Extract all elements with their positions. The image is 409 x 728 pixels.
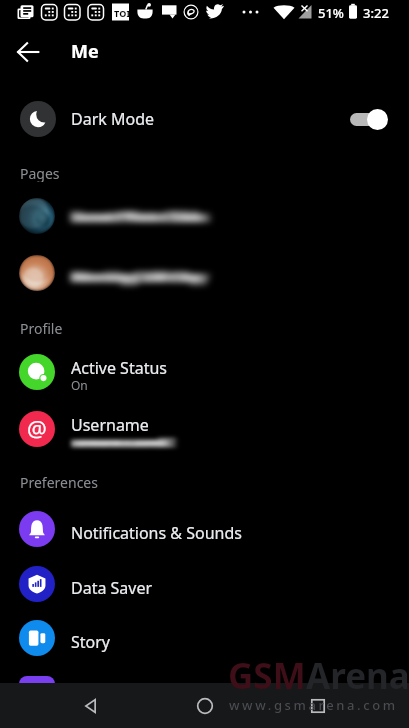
button[interactable]: Back (6, 30, 50, 74)
staticText: someone.name2 (79, 434, 178, 450)
staticText: Morning Cafe Day (63, 266, 197, 286)
button[interactable]: Home (184, 685, 226, 727)
staticText: someone.name2 (70, 434, 169, 450)
button[interactable]: Active Status (0, 354, 409, 400)
staticText: someone.name2 (67, 434, 166, 450)
staticText: Morning Cafe Day (72, 266, 206, 286)
staticText: Sunset Photo Clubs (67, 207, 202, 226)
button[interactable]: Sunset Photo Clubs (0, 198, 409, 244)
button[interactable]: Morning Cafe Day (0, 255, 409, 301)
staticText: someone.name2 (65, 434, 164, 450)
staticText: Morning Cafe Day (70, 266, 204, 286)
staticText: TOI (114, 7, 131, 19)
staticText: Me (71, 39, 99, 64)
staticText: Preferences (20, 473, 98, 491)
staticText: Notifications & Sounds (71, 522, 242, 544)
staticText: Sunset Photo Clubs (69, 207, 204, 226)
staticText: Dark Mode (71, 108, 155, 130)
staticText: On (71, 377, 88, 393)
button[interactable]: Story (0, 620, 409, 666)
staticText: Morning Cafe Day (75, 266, 209, 286)
staticText: Morning Cafe Day (67, 266, 201, 286)
staticText: Active Status (71, 357, 167, 379)
staticText: Sunset Photo Clubs (76, 207, 211, 226)
staticText: Sunset Photo Clubs (64, 207, 199, 226)
staticText: Morning Cafe Day (64, 266, 198, 286)
staticText: www.gsmarena.com (229, 696, 398, 714)
staticText: Sunset Photo Clubs (78, 207, 213, 226)
staticText: Morning Cafe Day (78, 266, 212, 286)
staticText: Sunset Photo Clubs (70, 207, 205, 226)
staticText: Sunset Photo Clubs (66, 207, 201, 226)
staticText: Sunset Photo Clubs (73, 207, 208, 226)
staticText: Data Saver (71, 577, 153, 599)
staticText: someone.name2 (68, 434, 167, 450)
staticText: @ (27, 413, 47, 443)
button[interactable]: Dark Mode (0, 96, 409, 142)
staticText: someone.name2 (73, 434, 172, 450)
staticText: someone.name2 (76, 434, 175, 450)
staticText: 3:22 (363, 4, 389, 22)
staticText: Morning Cafe Day (76, 266, 210, 286)
staticText: Story (71, 631, 111, 653)
button[interactable]: @ (0, 411, 409, 457)
staticText: GSM (228, 652, 306, 700)
staticText: someone.name2 (64, 434, 163, 450)
staticText: 51% (318, 4, 344, 22)
staticText: Morning Cafe Day (73, 266, 207, 286)
staticText: Morning Cafe Day (66, 266, 200, 286)
staticText: someone.name2 (71, 434, 170, 450)
staticText: Username (71, 414, 149, 436)
button[interactable]: Recents (297, 685, 339, 727)
staticText: Sunset Photo Clubs (63, 207, 198, 226)
staticText: someone.name2 (77, 434, 176, 450)
button[interactable]: Back (70, 685, 112, 727)
button[interactable]: Data Saver (0, 566, 409, 612)
staticText: Morning Cafe Day (69, 266, 203, 286)
staticText: someone.name2 (74, 434, 173, 450)
staticText: Sunset Photo Clubs (72, 207, 207, 226)
staticText: Profile (20, 319, 63, 337)
staticText: Pages (20, 164, 60, 182)
button[interactable]: Notifications & Sounds (0, 511, 409, 557)
staticText: Arena (306, 652, 409, 700)
staticText: Sunset Photo Clubs (75, 207, 210, 226)
